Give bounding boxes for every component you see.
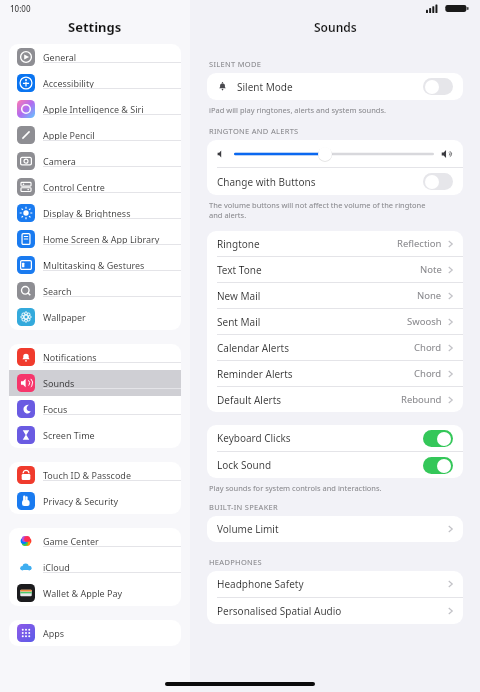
button[interactable]: Volume Limit xyxy=(217,516,453,542)
button[interactable]: Display & Brightness xyxy=(9,200,181,226)
staticText: Wallpaper xyxy=(43,311,86,323)
button[interactable]: Focus xyxy=(9,396,181,422)
button[interactable]: Notifications xyxy=(9,344,181,370)
button[interactable]: Headphone Safety xyxy=(217,571,453,597)
button[interactable]: Camera xyxy=(9,148,181,174)
button[interactable]: Apps xyxy=(9,620,181,646)
button[interactable]: New Mail xyxy=(217,283,453,308)
staticText: Display & Brightness xyxy=(43,207,131,219)
staticText: Apps xyxy=(43,627,65,639)
staticText: iPad will play ringtones, alerts and sys… xyxy=(209,105,387,115)
button[interactable]: Screen Time xyxy=(9,422,181,448)
button[interactable]: Touch ID & Passcode xyxy=(9,462,181,488)
staticText: Reminder Alerts xyxy=(217,367,293,381)
staticText: Sounds xyxy=(314,19,357,35)
staticText: Privacy & Security xyxy=(43,495,119,507)
staticText: Multitasking & Gestures xyxy=(43,259,145,271)
staticText: Personalised Spatial Audio xyxy=(217,604,342,618)
staticText: Camera xyxy=(43,155,76,167)
button[interactable]: Game Center xyxy=(9,528,181,554)
staticText: Apple Pencil xyxy=(43,129,95,141)
button[interactable]: Sounds xyxy=(9,370,181,396)
button[interactable]: Ringtone xyxy=(217,231,453,256)
staticText: Text Tone xyxy=(217,263,262,277)
button[interactable]: Toggle on xyxy=(423,457,453,474)
staticText: Control Centre xyxy=(43,181,105,193)
staticText: Swoosh xyxy=(407,315,442,328)
staticText: Search xyxy=(43,285,72,297)
button[interactable]: Keyboard Clicks xyxy=(217,425,453,451)
button[interactable]: Reminder Alerts xyxy=(217,361,453,386)
staticText: Calendar Alerts xyxy=(217,341,289,355)
staticText: None xyxy=(417,289,442,302)
button[interactable]: Control Centre xyxy=(9,174,181,200)
staticText: Home Screen & App Library xyxy=(43,233,160,245)
button[interactable]: Toggle off xyxy=(423,173,453,190)
staticText: 10:00 xyxy=(10,3,31,14)
staticText: New Mail xyxy=(217,289,261,303)
button[interactable]: Wallet & Apple Pay xyxy=(9,580,181,606)
button[interactable]: Accessibility xyxy=(9,70,181,96)
staticText: Silent Mode xyxy=(237,80,293,94)
staticText: Default Alerts xyxy=(217,393,282,407)
staticText: Touch ID & Passcode xyxy=(43,469,131,481)
staticText: Focus xyxy=(43,403,68,415)
button[interactable]: Lock Sound xyxy=(217,452,453,478)
staticText: Sent Mail xyxy=(217,315,261,329)
staticText: Sounds xyxy=(43,377,75,389)
staticText: Lock Sound xyxy=(217,458,272,472)
staticText: Notifications xyxy=(43,351,97,363)
button[interactable]: Calendar Alerts xyxy=(217,335,453,360)
button[interactable]: General xyxy=(9,44,181,70)
staticText: Change with Buttons xyxy=(217,175,316,189)
staticText: BUILT-IN SPEAKER xyxy=(209,502,279,512)
button[interactable]: Privacy & Security xyxy=(9,488,181,514)
staticText: Game Center xyxy=(43,535,99,547)
button[interactable]: Apple Intelligence & Siri xyxy=(9,96,181,122)
staticText: Note xyxy=(420,263,442,276)
button[interactable]: Apple Pencil xyxy=(9,122,181,148)
staticText: Play sounds for system controls and inte… xyxy=(209,483,382,493)
button[interactable]: iCloud xyxy=(9,554,181,580)
staticText: Rebound xyxy=(401,393,442,406)
button[interactable]: Toggle off xyxy=(423,78,453,95)
staticText: Wallet & Apple Pay xyxy=(43,587,123,599)
staticText: Keyboard Clicks xyxy=(217,431,291,445)
button[interactable]: Wallpaper xyxy=(9,304,181,330)
staticText: RINGTONE AND ALERTS xyxy=(209,126,299,136)
staticText: iCloud xyxy=(43,561,70,573)
staticText: Accessibility xyxy=(43,77,94,89)
staticText: General xyxy=(43,51,77,63)
staticText: Settings xyxy=(68,18,122,36)
staticText: The volume buttons will not affect the v… xyxy=(209,200,426,220)
staticText: Apple Intelligence & Siri xyxy=(43,103,144,115)
staticText: SILENT MODE xyxy=(209,59,262,69)
button[interactable]: Toggle on xyxy=(423,430,453,447)
button[interactable]: Change with Buttons xyxy=(217,168,453,195)
button[interactable]: Personalised Spatial Audio xyxy=(217,598,453,624)
staticText: Ringtone xyxy=(217,237,260,251)
button[interactable]: Text Tone xyxy=(217,257,453,282)
button[interactable]: Home Screen & App Library xyxy=(9,226,181,252)
button[interactable]: Search xyxy=(9,278,181,304)
staticText: Reflection xyxy=(397,237,442,250)
staticText: HEADPHONES xyxy=(209,557,262,567)
button[interactable]: Multitasking & Gestures xyxy=(9,252,181,278)
button[interactable]: Default Alerts xyxy=(217,387,453,412)
button[interactable]: Silent Mode xyxy=(217,73,453,100)
button[interactable]: Sent Mail xyxy=(217,309,453,334)
staticText: Screen Time xyxy=(43,429,95,441)
staticText: Chord xyxy=(414,367,442,380)
staticText: Volume Limit xyxy=(217,522,279,536)
staticText: Headphone Safety xyxy=(217,577,304,591)
staticText: Chord xyxy=(414,341,442,354)
